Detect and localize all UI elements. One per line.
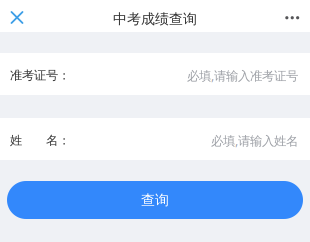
button[interactable]: 查询 <box>7 181 303 219</box>
button[interactable]: 准考证号： <box>0 53 310 95</box>
staticText: 准考证号： <box>10 68 70 83</box>
button[interactable]: More options <box>274 1 310 31</box>
button[interactable]: 姓 名： <box>0 118 310 160</box>
button[interactable]: Close <box>0 1 34 30</box>
staticText: 查询 <box>141 191 169 209</box>
staticText: 姓 名： <box>10 133 70 148</box>
staticText: 必填,请输入准考证号 <box>187 67 298 84</box>
staticText: 必填,请输入姓名 <box>211 132 298 149</box>
staticText: 中考成绩查询 <box>113 10 197 28</box>
